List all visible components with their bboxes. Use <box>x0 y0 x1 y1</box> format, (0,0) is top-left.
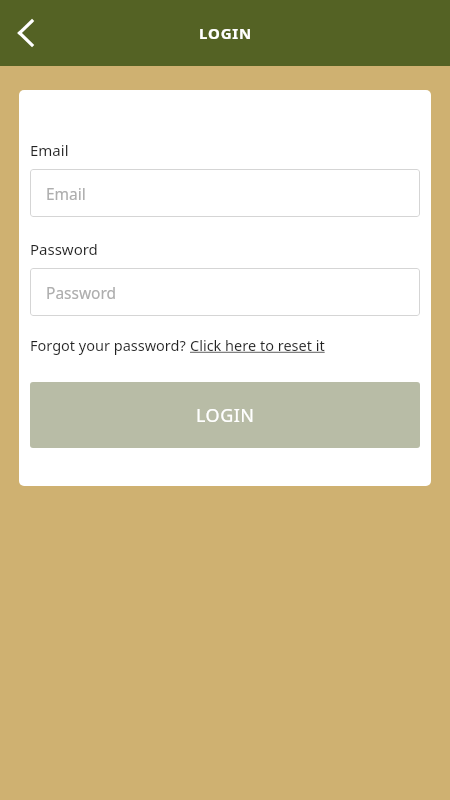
staticText: LOGIN <box>199 23 252 43</box>
button[interactable]: Back <box>4 11 48 55</box>
staticText: LOGIN <box>196 403 255 428</box>
staticText: Click here to reset it <box>190 335 325 355</box>
button[interactable]: Email <box>30 169 420 217</box>
button[interactable]: LOGIN <box>30 382 420 448</box>
staticText: Password <box>30 239 98 259</box>
button[interactable]: Click here to reset it <box>190 335 325 355</box>
staticText: Forgot your password? <box>30 335 190 355</box>
staticText: Email <box>46 183 86 204</box>
button[interactable]: Password <box>30 268 420 316</box>
staticText: Password <box>46 282 117 303</box>
staticText: Email <box>30 140 69 160</box>
